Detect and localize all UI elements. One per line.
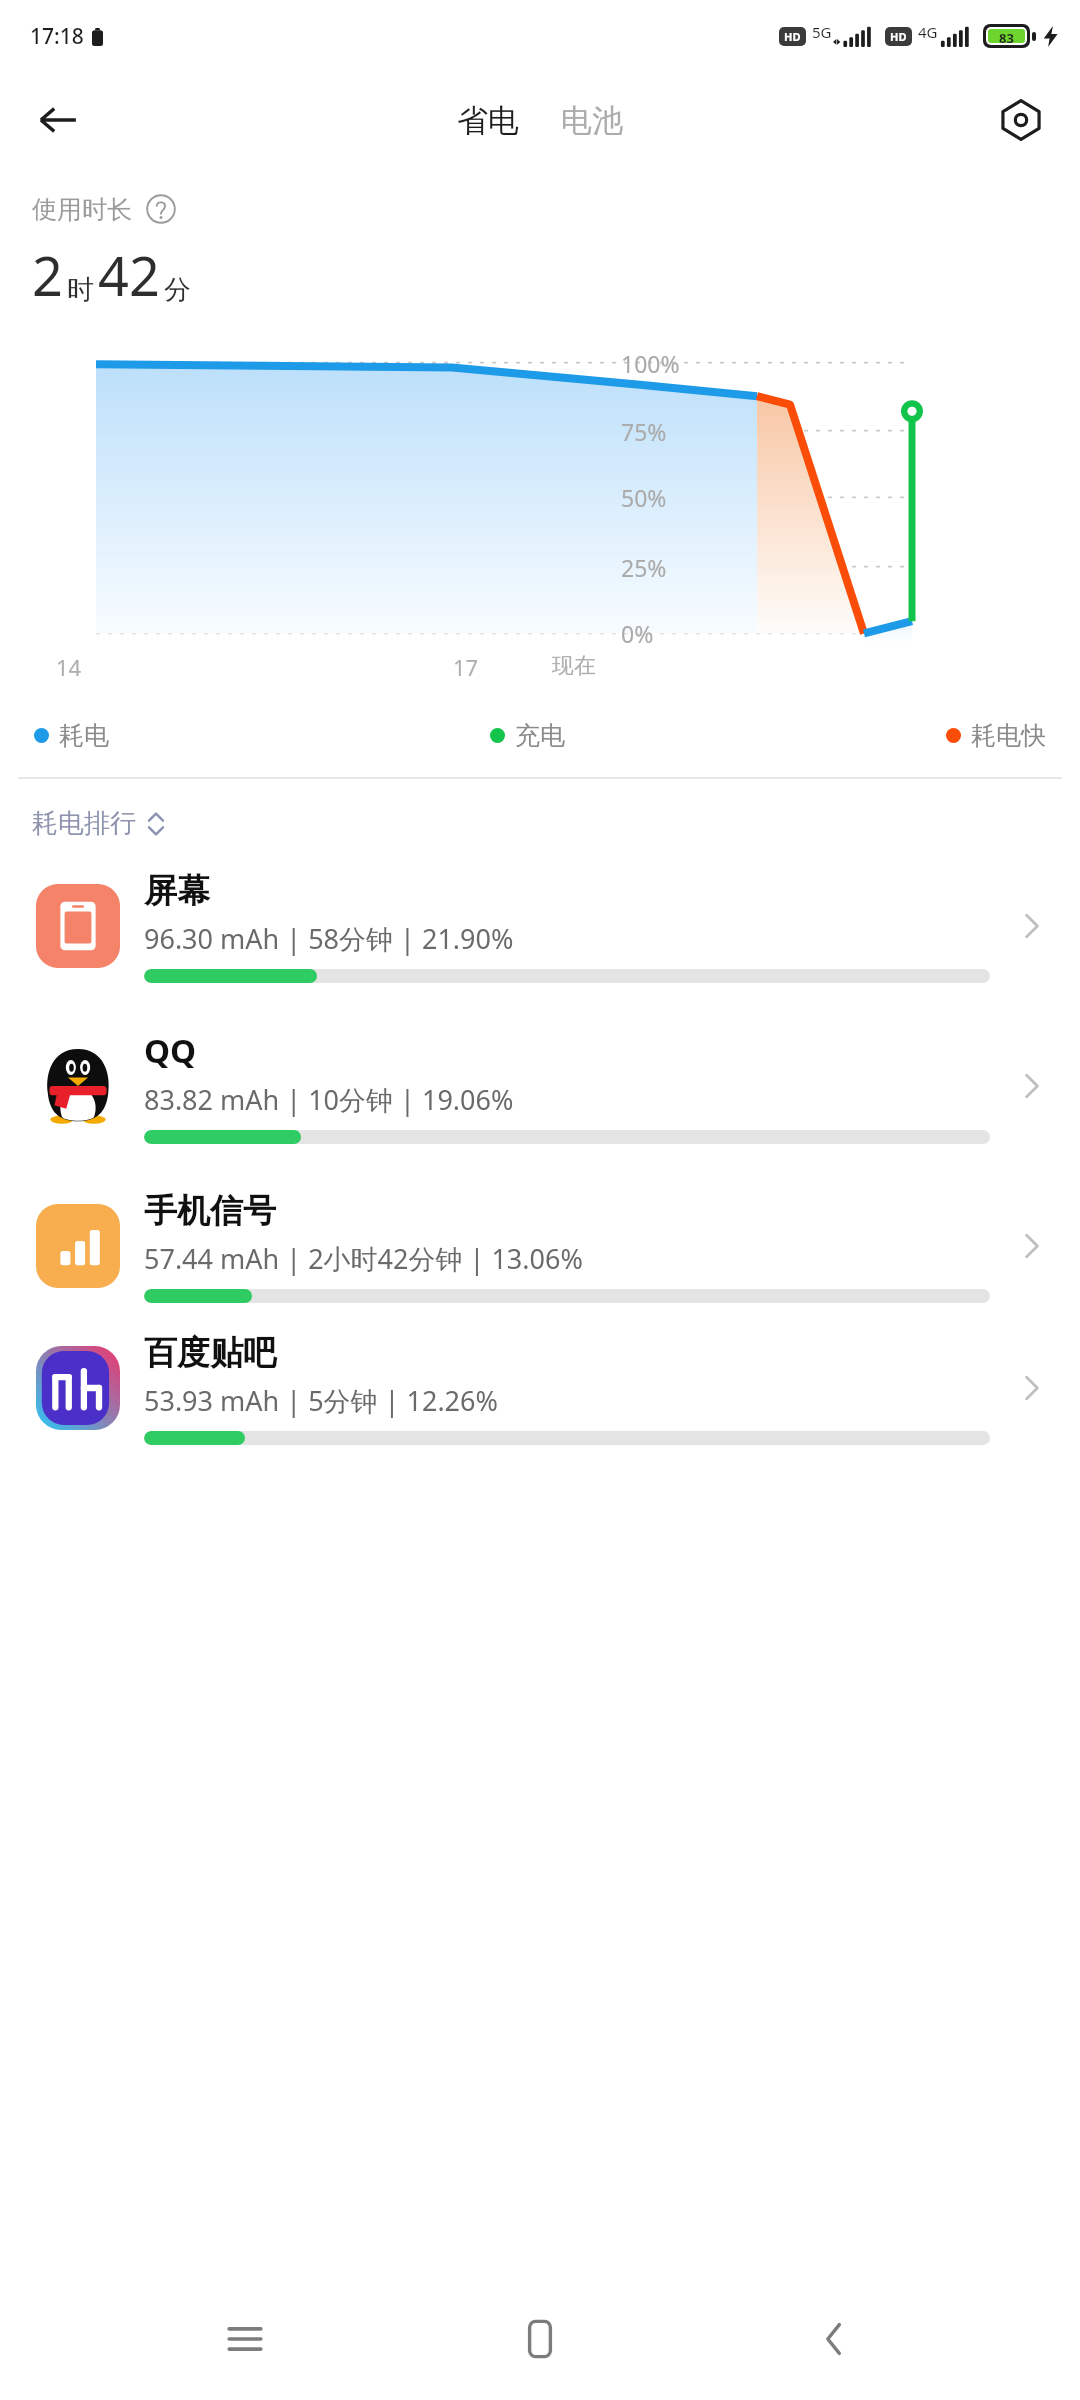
- button[interactable]: 耗电排行: [32, 807, 166, 840]
- button[interactable]: 省电: [449, 93, 527, 148]
- button[interactable]: QQ: [0, 1006, 1080, 1166]
- button[interactable]: Recent apps: [195, 2289, 295, 2389]
- other: Details: 手机信号: [1006, 1221, 1056, 1271]
- staticText: 充电: [515, 720, 565, 751]
- staticText: HD: [890, 29, 907, 44]
- staticText: 83: [999, 29, 1014, 43]
- staticText: HD: [784, 29, 801, 44]
- staticText: 分: [164, 273, 191, 307]
- other: Details: 屏幕: [1006, 901, 1056, 951]
- other: Details: 百度贴吧: [1006, 1363, 1056, 1413]
- staticText: 时: [67, 273, 94, 307]
- other: Details: QQ: [1006, 1061, 1056, 1111]
- staticText: 耗电: [59, 720, 109, 751]
- button[interactable]: 屏幕: [0, 846, 1080, 1006]
- staticText: 50%: [621, 482, 667, 513]
- staticText: 83.82 mAh | 10分钟 | 19.06%: [144, 1081, 514, 1118]
- button[interactable]: Back: [26, 88, 90, 152]
- button[interactable]: 耗电快: [946, 720, 1046, 751]
- button[interactable]: Home: [490, 2289, 590, 2389]
- button[interactable]: 手机信号: [0, 1166, 1080, 1326]
- staticText: 96.30 mAh | 58分钟 | 21.90%: [144, 920, 514, 957]
- staticText: 14: [56, 652, 82, 682]
- staticText: 使用时长: [32, 194, 132, 225]
- staticText: 5G: [812, 22, 832, 42]
- button[interactable]: 百度贴吧: [0, 1326, 1080, 1450]
- button[interactable]: 电池: [553, 93, 631, 148]
- staticText: 42: [98, 238, 160, 312]
- staticText: QQ: [144, 1028, 197, 1073]
- staticText: 57.44 mAh | 2小时42分钟 | 13.06%: [144, 1240, 583, 1277]
- staticText: 2: [32, 238, 63, 312]
- staticText: 屏幕: [144, 870, 210, 912]
- staticText: 53.93 mAh | 5分钟 | 12.26%: [144, 1382, 498, 1419]
- staticText: 75%: [621, 416, 667, 447]
- button[interactable]: Settings: [988, 87, 1054, 153]
- staticText: 17: [453, 652, 479, 682]
- staticText: 省电: [457, 101, 519, 140]
- button[interactable]: Help: [144, 192, 178, 226]
- staticText: 0%: [621, 618, 654, 649]
- staticText: 耗电排行: [32, 807, 136, 840]
- button[interactable]: 耗电: [34, 720, 109, 751]
- staticText: 25%: [621, 552, 667, 583]
- staticText: 百度贴吧: [144, 1332, 276, 1374]
- staticText: 耗电快: [971, 720, 1046, 751]
- staticText: 4G: [918, 22, 938, 42]
- staticText: 17:18: [30, 22, 84, 51]
- staticText: 现在: [552, 652, 596, 680]
- staticText: 手机信号: [144, 1190, 276, 1232]
- staticText: 100%: [621, 348, 680, 379]
- staticText: 电池: [561, 101, 623, 140]
- button[interactable]: 充电: [490, 720, 565, 751]
- button[interactable]: Back: [785, 2289, 885, 2389]
